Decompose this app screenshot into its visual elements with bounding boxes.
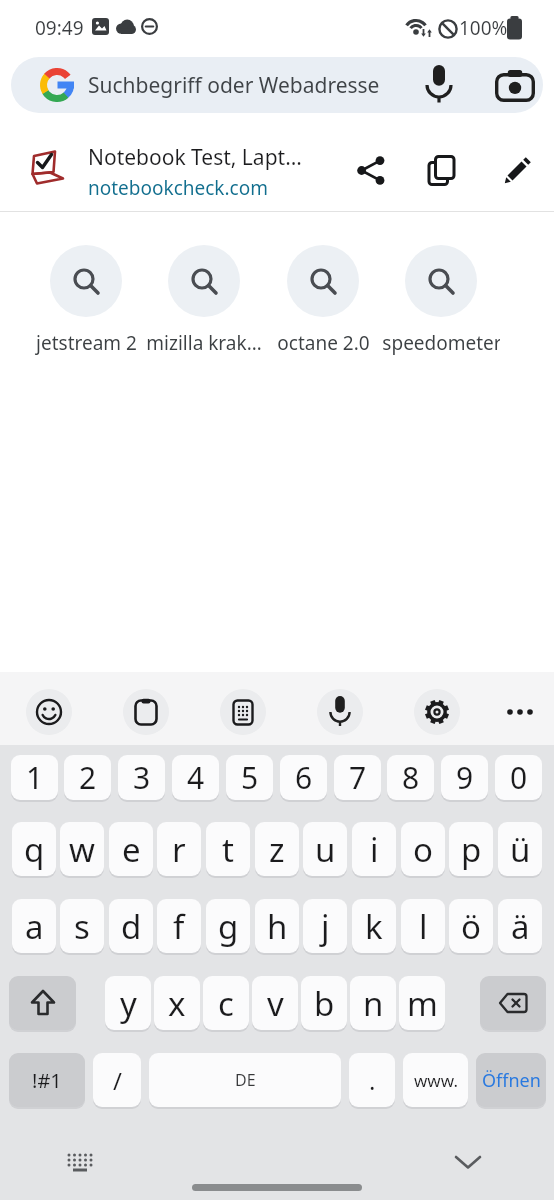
button[interactable]: l bbox=[401, 899, 445, 953]
button[interactable]: n bbox=[350, 976, 396, 1030]
staticText: a bbox=[25, 904, 44, 949]
staticText: f bbox=[173, 904, 185, 949]
button[interactable] bbox=[494, 148, 540, 194]
button[interactable]: 9 bbox=[441, 755, 488, 800]
staticText: m bbox=[407, 981, 438, 1026]
button[interactable]: o bbox=[401, 822, 445, 876]
button[interactable]: u bbox=[303, 822, 347, 876]
button[interactable]: w bbox=[60, 822, 104, 876]
button[interactable]: k bbox=[352, 899, 396, 953]
button[interactable]: Suchbegriff oder Webadresse bbox=[11, 57, 543, 113]
button[interactable]: 0 bbox=[495, 755, 542, 800]
staticText: ü bbox=[510, 827, 531, 872]
button[interactable] bbox=[489, 69, 541, 103]
button[interactable] bbox=[444, 1142, 492, 1182]
staticText: d bbox=[121, 904, 142, 949]
staticText: k bbox=[365, 904, 383, 949]
staticText: w bbox=[69, 827, 95, 872]
staticText: 0 bbox=[510, 757, 528, 798]
button[interactable]: i bbox=[352, 822, 396, 876]
staticText: mizilla krak… bbox=[146, 330, 262, 356]
button[interactable]: 4 bbox=[172, 755, 219, 800]
button[interactable]: y bbox=[105, 976, 151, 1030]
staticText: i bbox=[370, 827, 379, 872]
staticText: v bbox=[267, 981, 284, 1026]
button[interactable]: Öffnen bbox=[476, 1053, 546, 1107]
button[interactable]: c bbox=[203, 976, 249, 1030]
button[interactable]: octane 2.0 bbox=[264, 240, 382, 355]
staticText: 2 bbox=[79, 757, 97, 798]
button[interactable]: h bbox=[255, 899, 299, 953]
button[interactable]: b bbox=[301, 976, 347, 1030]
staticText: DE bbox=[235, 1069, 256, 1091]
staticText: Suchbegriff oder Webadresse bbox=[88, 71, 380, 100]
staticText: s bbox=[74, 904, 90, 949]
button[interactable] bbox=[317, 689, 363, 735]
staticText: r bbox=[172, 827, 186, 872]
button[interactable]: m bbox=[399, 976, 445, 1030]
staticText: x bbox=[168, 981, 186, 1026]
button[interactable] bbox=[123, 689, 169, 735]
button[interactable] bbox=[56, 1142, 104, 1182]
button[interactable]: 8 bbox=[387, 755, 434, 800]
button[interactable]: j bbox=[303, 899, 347, 953]
button[interactable]: f bbox=[157, 899, 201, 953]
button[interactable]: Notebook Test, Lapt… bbox=[0, 134, 554, 208]
staticText: ä bbox=[511, 904, 530, 949]
button[interactable]: ö bbox=[449, 899, 493, 953]
button[interactable]: 1 bbox=[11, 755, 58, 800]
staticText: u bbox=[315, 827, 336, 872]
staticText: q bbox=[24, 827, 45, 872]
button[interactable] bbox=[9, 976, 76, 1030]
staticText: p bbox=[461, 827, 482, 872]
button[interactable]: 6 bbox=[280, 755, 327, 800]
button[interactable] bbox=[419, 148, 465, 194]
button[interactable]: jetstream 2 bbox=[27, 240, 145, 355]
button[interactable] bbox=[497, 689, 543, 735]
button[interactable]: !#1 bbox=[9, 1053, 85, 1107]
staticText: www. bbox=[414, 1069, 458, 1092]
staticText: / bbox=[113, 1064, 122, 1097]
button[interactable]: mizilla krak… bbox=[145, 240, 263, 355]
button[interactable]: speedometer bbox=[382, 240, 500, 355]
button[interactable]: 2 bbox=[64, 755, 111, 800]
staticText: l bbox=[419, 904, 428, 949]
button[interactable]: q bbox=[12, 822, 56, 876]
staticText: t bbox=[222, 827, 234, 872]
button[interactable]: s bbox=[60, 899, 104, 953]
staticText: 3 bbox=[133, 757, 151, 798]
staticText: e bbox=[122, 827, 141, 872]
staticText: speedometer bbox=[382, 330, 500, 356]
button[interactable] bbox=[220, 689, 266, 735]
button[interactable]: ä bbox=[498, 899, 542, 953]
staticText: jetstream 2 bbox=[36, 330, 137, 356]
button[interactable]: 3 bbox=[118, 755, 165, 800]
button[interactable]: r bbox=[157, 822, 201, 876]
staticText: 9 bbox=[456, 757, 474, 798]
button[interactable]: 5 bbox=[226, 755, 273, 800]
button[interactable]: www. bbox=[403, 1053, 468, 1107]
staticText: Öffnen bbox=[482, 1068, 541, 1093]
button[interactable]: e bbox=[109, 822, 153, 876]
button[interactable]: v bbox=[252, 976, 298, 1030]
staticText: 6 bbox=[295, 757, 313, 798]
button[interactable] bbox=[414, 689, 460, 735]
button[interactable]: p bbox=[449, 822, 493, 876]
button[interactable]: z bbox=[255, 822, 299, 876]
button[interactable]: ü bbox=[498, 822, 542, 876]
button[interactable] bbox=[480, 976, 546, 1030]
button[interactable]: 7 bbox=[334, 755, 381, 800]
button[interactable]: DE bbox=[149, 1053, 341, 1107]
button[interactable]: t bbox=[206, 822, 250, 876]
button[interactable]: x bbox=[154, 976, 200, 1030]
staticText: j bbox=[321, 904, 330, 949]
button[interactable]: g bbox=[206, 899, 250, 953]
button[interactable]: a bbox=[12, 899, 56, 953]
button[interactable]: d bbox=[109, 899, 153, 953]
button[interactable] bbox=[415, 65, 463, 105]
staticText: 7 bbox=[349, 757, 367, 798]
button[interactable] bbox=[26, 689, 72, 735]
button[interactable]: / bbox=[93, 1053, 141, 1107]
button[interactable] bbox=[348, 148, 394, 194]
button[interactable]: . bbox=[349, 1053, 395, 1107]
